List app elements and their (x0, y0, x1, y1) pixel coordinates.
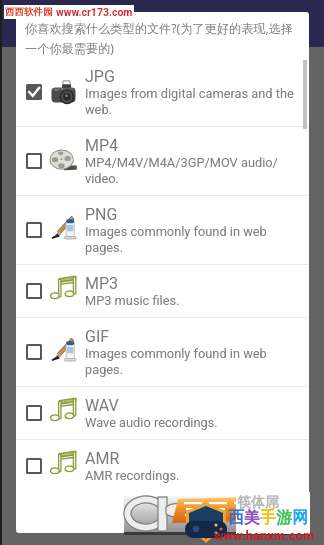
button[interactable]: Unchecked (26, 222, 42, 238)
button[interactable]: Unchecked (16, 387, 309, 439)
staticText: 你喜欢搜索什么类型的文件?(为了更好的表现,选择一个你最需要的) (25, 20, 305, 57)
button[interactable]: Unchecked (16, 127, 309, 195)
staticText: 美 (244, 508, 260, 528)
staticText: 西西软件园 (5, 6, 53, 18)
staticText: 网 (292, 508, 308, 528)
button[interactable]: Unchecked (26, 405, 42, 421)
staticText: GIF (85, 327, 110, 346)
button[interactable]: Unchecked (16, 440, 309, 492)
button[interactable]: Unchecked (26, 283, 42, 299)
staticText: MP3 (85, 274, 119, 293)
button[interactable]: Unchecked (26, 153, 42, 169)
button[interactable]: Unchecked (26, 458, 42, 474)
button[interactable]: Unchecked (16, 265, 309, 317)
staticText: 手 (260, 508, 276, 528)
button[interactable]: Unchecked (16, 196, 309, 264)
button[interactable]: Unchecked (16, 318, 309, 386)
staticText: Images from digital cameras and the web. (85, 86, 299, 117)
staticText: PNG (85, 205, 118, 224)
staticText: 筷体 (237, 494, 265, 512)
staticText: WAV (85, 396, 119, 415)
staticText: 游 (276, 508, 292, 528)
staticText: MP3 music files. (85, 293, 180, 308)
staticText: www.cr173.com (56, 6, 133, 18)
staticText: MP4/M4V/M4A/3GP/MOV audio/video. (85, 155, 299, 186)
staticText: AMR (85, 449, 120, 468)
staticText: Images commonly found in web pages. (85, 346, 299, 377)
staticText: Wave audio recordings. (85, 415, 218, 430)
staticText: 西 (228, 508, 244, 528)
staticText: JPG (85, 67, 115, 86)
staticText: www.hanxm.com (214, 528, 315, 543)
staticText: MP4 (85, 136, 119, 155)
button[interactable]: Unchecked (26, 344, 42, 360)
staticText: 屌 (265, 494, 279, 512)
button[interactable]: Checked (26, 84, 42, 100)
button[interactable]: Checked (16, 58, 309, 126)
staticText: AMR recordings. (85, 468, 180, 483)
staticText: Images commonly found in web pages. (85, 224, 299, 255)
